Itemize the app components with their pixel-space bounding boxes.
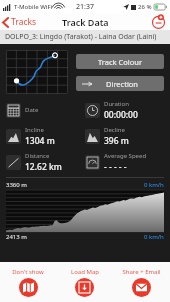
- staticText: 0 km/h: [144, 181, 164, 189]
- button[interactable]: Distance: [6, 149, 85, 175]
- staticText: Track Data: [62, 16, 109, 28]
- staticText: Don't show: [12, 268, 44, 276]
- staticText: 2413 m: [6, 233, 27, 241]
- staticText: Average Speed: [104, 152, 147, 160]
- staticText: Decline: [104, 126, 125, 134]
- staticText: 00:00:00: [104, 109, 138, 121]
- staticText: Incline: [25, 126, 44, 134]
- button[interactable]: Incline: [6, 123, 85, 149]
- staticText: 3360 m: [6, 181, 27, 189]
- staticText: 26 %: [138, 3, 152, 11]
- staticText: Share + Email: [122, 268, 161, 276]
- button[interactable]: Direction: [76, 76, 164, 91]
- staticText: 396 m: [104, 135, 129, 147]
- button[interactable]: Date: [6, 97, 85, 123]
- button[interactable]: Add track: [151, 14, 166, 29]
- staticText: 12.62 km: [25, 161, 62, 173]
- staticText: Direction: [96, 79, 148, 89]
- button[interactable]: Track Colour: [76, 54, 164, 69]
- staticText: DOLPO_3: Lingdo (Tarakot) - Laina Odar (…: [5, 32, 157, 42]
- staticText: Date: [25, 106, 39, 114]
- button[interactable]: Tracks: [0, 14, 41, 30]
- button[interactable]: Track map preview: [6, 50, 68, 94]
- staticText: Tracks: [11, 16, 37, 28]
- staticText: Track Colour: [98, 57, 142, 67]
- button[interactable]: Decline: [85, 123, 164, 149]
- staticText: Distance: [25, 152, 50, 160]
- button[interactable]: Duration: [85, 97, 164, 123]
- staticText: - - - - -: [104, 161, 127, 173]
- button[interactable]: Don't show: [0, 262, 56, 302]
- staticText: 1304 m: [25, 135, 55, 147]
- button[interactable]: Elevation profile: [6, 190, 164, 232]
- button[interactable]: Share + Email: [113, 262, 170, 302]
- staticText: 21:37: [76, 2, 94, 12]
- staticText: Duration: [104, 100, 129, 108]
- button[interactable]: Load Map: [56, 262, 113, 302]
- staticText: Load Map: [71, 268, 99, 276]
- staticText: T-Mobile WiFi: [14, 3, 53, 11]
- staticText: 0 km/h: [144, 233, 164, 241]
- button[interactable]: Average Speed: [85, 149, 164, 175]
